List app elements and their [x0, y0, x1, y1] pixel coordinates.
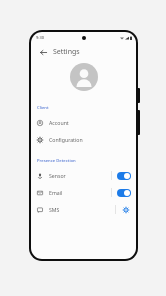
staticText: Configuration — [49, 136, 83, 143]
button[interactable]: Sensor — [31, 167, 136, 184]
staticText: Email — [49, 189, 63, 196]
staticText: SMS — [49, 206, 60, 213]
staticText: 9:30 — [36, 35, 44, 40]
button[interactable]: Configure SMS — [121, 205, 131, 215]
button[interactable]: SMS — [31, 201, 136, 218]
button[interactable]: Account — [31, 114, 136, 131]
button[interactable]: Back — [37, 46, 49, 58]
button[interactable]: Email — [31, 184, 136, 201]
staticText: Presence Detection — [37, 158, 76, 164]
staticText: Account — [49, 119, 69, 126]
button[interactable]: Toggle on — [117, 189, 131, 197]
staticText: Client — [37, 105, 49, 111]
button[interactable]: Configuration — [31, 131, 136, 148]
staticText: Sensor — [49, 172, 66, 179]
staticText: Settings — [53, 47, 80, 57]
button[interactable]: Toggle on — [117, 172, 131, 180]
